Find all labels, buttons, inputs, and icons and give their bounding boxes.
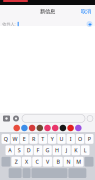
button[interactable]: O (76, 134, 84, 144)
staticText: K (74, 147, 77, 154)
button[interactable]: 取消 (79, 7, 92, 16)
button[interactable]: E (20, 134, 28, 144)
button[interactable]: I (66, 134, 75, 144)
staticText: Y (51, 135, 54, 142)
button[interactable]: App (67, 125, 74, 131)
button[interactable]: Q (1, 134, 10, 144)
button[interactable]: F (34, 145, 42, 155)
staticText: F (37, 147, 40, 154)
staticText: W (12, 135, 17, 142)
button[interactable]: App (52, 125, 58, 131)
button[interactable]: P (85, 134, 93, 144)
button[interactable]: App (37, 125, 43, 131)
button[interactable]: B (53, 157, 63, 167)
button[interactable]: App (44, 125, 51, 131)
staticText: H (55, 147, 59, 154)
staticText: D (27, 147, 31, 154)
staticText: I (70, 135, 72, 142)
staticText: S (18, 147, 21, 154)
staticText: Q (4, 135, 8, 142)
button[interactable]: Key (68, 168, 86, 178)
button[interactable]: App (75, 125, 82, 131)
staticText: T (41, 135, 44, 142)
staticText: U (59, 135, 63, 142)
staticText: M (76, 158, 81, 165)
button[interactable]: K (71, 145, 80, 155)
staticText: 收件人: (2, 21, 15, 27)
button[interactable]: U (57, 134, 66, 144)
button[interactable]: R (29, 134, 38, 144)
button[interactable]: App (60, 125, 66, 131)
button[interactable]: H (53, 145, 61, 155)
staticText: B (56, 158, 59, 165)
button[interactable]: Send (87, 115, 93, 121)
staticText: 取消 (81, 8, 91, 15)
button[interactable]: M (74, 157, 84, 167)
staticText: X (25, 158, 28, 165)
staticText: R (32, 135, 35, 142)
button[interactable]: X (22, 157, 31, 167)
button[interactable]: Photos (13, 115, 19, 121)
button[interactable]: Y (48, 134, 56, 144)
staticText: C (36, 158, 39, 165)
button[interactable]: W (11, 134, 19, 144)
button[interactable]: S (15, 145, 23, 155)
button[interactable]: L (81, 145, 89, 155)
button[interactable]: T (39, 134, 47, 144)
button[interactable]: Camera (3, 115, 10, 121)
staticText: L (84, 147, 87, 154)
button[interactable]: D (24, 145, 33, 155)
button[interactable]: Key (84, 157, 93, 167)
button[interactable]: A (5, 145, 14, 155)
button[interactable]: Key (31, 168, 67, 178)
staticText: G (45, 147, 49, 154)
staticText: Z (15, 158, 18, 165)
staticText: O (78, 135, 82, 142)
button[interactable]: N (64, 157, 73, 167)
button[interactable]: V (43, 157, 52, 167)
button[interactable]: App (29, 125, 35, 131)
staticText: J (66, 147, 67, 154)
button[interactable]: Z (11, 157, 21, 167)
button[interactable]: Key (22, 168, 30, 178)
staticText: 新信息 (40, 8, 55, 15)
staticText: E (23, 135, 26, 142)
button[interactable]: G (43, 145, 52, 155)
button[interactable]: Key (1, 157, 10, 167)
staticText: P (88, 135, 91, 142)
button[interactable]: C (32, 157, 42, 167)
button[interactable]: Add contact (86, 21, 92, 27)
staticText: V (46, 158, 49, 165)
staticText: A (8, 147, 11, 154)
staticText: N (66, 158, 70, 165)
button[interactable]: App (13, 125, 20, 131)
button[interactable]: J (62, 145, 71, 155)
button[interactable]: App (21, 125, 28, 131)
button[interactable]: Key (9, 168, 22, 178)
